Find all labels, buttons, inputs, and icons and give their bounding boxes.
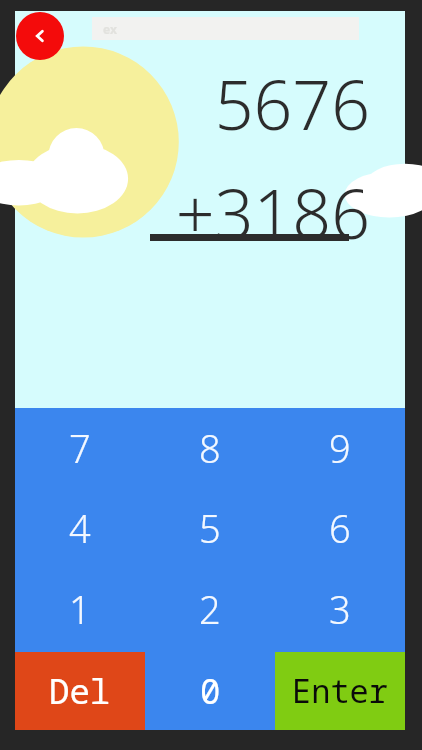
- button[interactable]: Back: [16, 12, 64, 60]
- button[interactable]: 8: [145, 408, 275, 488]
- button[interactable]: Del: [15, 649, 145, 730]
- staticText: 8: [199, 422, 221, 474]
- button[interactable]: 7: [15, 408, 145, 488]
- staticText: 5: [199, 502, 221, 554]
- staticText: 7: [69, 422, 91, 474]
- staticText: ex: [103, 21, 117, 37]
- button[interactable]: Enter: [275, 649, 405, 730]
- staticText: 1: [69, 583, 91, 635]
- staticText: 4: [69, 502, 91, 554]
- button[interactable]: 4: [15, 488, 145, 568]
- staticText: Enter: [292, 669, 389, 713]
- button[interactable]: 3: [275, 568, 405, 649]
- staticText: 9: [329, 422, 351, 474]
- button[interactable]: 2: [145, 568, 275, 649]
- staticText: 0: [200, 668, 221, 714]
- staticText: Del: [49, 668, 111, 714]
- button[interactable]: 9: [275, 408, 405, 488]
- button[interactable]: 1: [15, 568, 145, 649]
- staticText: 2: [199, 583, 221, 635]
- staticText: 3: [329, 583, 351, 635]
- button[interactable]: 0: [145, 649, 275, 730]
- button[interactable]: 5: [145, 488, 275, 568]
- button[interactable]: 6: [275, 488, 405, 568]
- staticText: 6: [329, 502, 351, 554]
- staticText: +3186: [125, 166, 370, 259]
- staticText: 5676: [125, 57, 370, 150]
